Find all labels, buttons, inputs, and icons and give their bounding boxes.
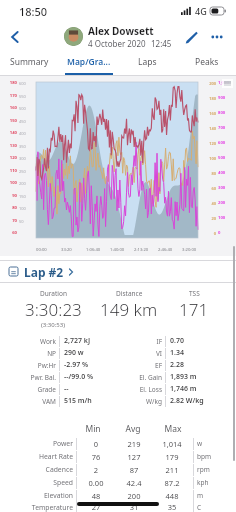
staticText: 1,746 m	[170, 384, 224, 394]
staticText: 150	[19, 194, 26, 199]
staticText: Speed	[16, 478, 73, 487]
staticText: El. Gain	[118, 373, 162, 382]
staticText: 400	[19, 131, 26, 136]
staticText: 0.00	[77, 478, 115, 488]
staticText: VAM	[12, 397, 56, 406]
staticText: 4G	[195, 5, 207, 17]
staticText: 180	[2, 80, 17, 86]
staticText: Cadence	[16, 465, 73, 474]
staticText: 170	[2, 93, 17, 99]
staticText: 1:06:40	[86, 247, 101, 253]
staticText: 1,000	[218, 80, 234, 86]
staticText: Duration	[40, 289, 67, 298]
button[interactable]: More options	[204, 24, 230, 50]
staticText: 50	[19, 219, 24, 224]
button[interactable]: Summary	[0, 51, 59, 73]
staticText: 3:30:23	[25, 298, 82, 321]
staticText: w	[197, 439, 222, 448]
staticText: 33:20	[61, 247, 72, 253]
staticText: m	[197, 491, 222, 500]
button[interactable]: Back	[0, 22, 30, 51]
staticText: 90	[2, 193, 17, 199]
button[interactable]: Chart legend	[222, 79, 233, 88]
staticText: 48	[77, 491, 115, 501]
staticText: Elevation	[16, 491, 73, 500]
staticText: Summary	[10, 56, 49, 68]
staticText: 2.28	[170, 360, 224, 370]
staticText: 800	[218, 110, 234, 116]
staticText: TSS	[189, 289, 200, 298]
staticText: 550	[19, 94, 26, 99]
staticText: Alex Dowsett	[88, 24, 154, 38]
staticText: 0	[77, 439, 115, 449]
staticText: 179	[153, 452, 191, 462]
staticText: Lap #2	[24, 264, 64, 280]
staticText: (3:30:53)	[41, 321, 65, 329]
staticText: 200	[19, 181, 26, 186]
staticText: 100	[205, 156, 216, 161]
staticText: 500	[218, 155, 234, 161]
staticText: 00:00	[36, 247, 47, 253]
staticText: C	[197, 503, 222, 512]
staticText: 1.34	[170, 348, 224, 358]
staticText: 171	[179, 298, 209, 321]
staticText: Pw:Hr	[12, 361, 56, 370]
staticText: 42.4	[115, 478, 153, 488]
staticText: --	[64, 384, 118, 394]
button[interactable]: Alex Dowsett	[64, 24, 172, 49]
staticText: NP	[12, 349, 56, 358]
staticText: 160	[2, 105, 17, 111]
staticText: 180	[205, 96, 216, 101]
staticText: 515 m/h	[64, 396, 118, 406]
staticText: 20	[205, 216, 216, 221]
staticText: 27	[77, 502, 115, 512]
staticText: -2.97 %	[64, 360, 118, 370]
staticText: 2:46:40	[158, 247, 173, 253]
staticText: Distance	[116, 289, 143, 298]
button[interactable]: Map/Gra...	[59, 51, 118, 73]
staticText: 300	[218, 185, 234, 191]
staticText: 1:40:00	[110, 247, 125, 253]
staticText: Temperature	[16, 503, 73, 512]
staticText: IF	[118, 337, 162, 346]
staticText: VI	[118, 349, 162, 358]
staticText: 448	[153, 491, 191, 501]
button[interactable]: Lap #2	[0, 261, 236, 282]
staticText: El. Loss	[118, 385, 162, 394]
staticText: 31	[115, 502, 153, 512]
staticText: 350	[19, 144, 26, 149]
staticText: Laps	[138, 56, 157, 68]
staticText: 100	[2, 180, 17, 186]
staticText: 40	[205, 201, 216, 206]
staticText: 290 w	[64, 348, 118, 358]
staticText: 0.70	[170, 336, 224, 346]
staticText: Heart Rate	[16, 452, 73, 461]
staticText: 3:20:00	[182, 247, 197, 253]
staticText: rpm	[197, 465, 222, 474]
staticText: 130	[2, 143, 17, 149]
staticText: Map/Gra...	[67, 56, 111, 68]
staticText: Work	[12, 337, 56, 346]
button[interactable]: Edit	[178, 24, 204, 50]
staticText: --/99.0 %	[64, 372, 118, 382]
staticText: 80	[205, 171, 216, 176]
staticText: EF	[118, 361, 162, 370]
staticText: Power	[16, 439, 73, 448]
staticText: Avg	[113, 423, 153, 435]
staticText: 200	[218, 200, 234, 206]
staticText: 140	[2, 130, 17, 136]
staticText: 127	[115, 452, 153, 462]
staticText: 600	[218, 140, 234, 146]
staticText: 160	[205, 111, 216, 116]
button[interactable]: Laps	[118, 51, 177, 73]
staticText: Peaks	[195, 56, 219, 68]
staticText: Pwr. Bal.	[12, 373, 56, 382]
staticText: W/kg	[118, 397, 162, 406]
staticText: 80	[2, 205, 17, 211]
staticText: 450	[19, 119, 26, 124]
staticText: 2	[77, 465, 115, 475]
staticText: 35	[153, 502, 191, 512]
staticText: 120	[2, 155, 17, 161]
staticText: 149 km	[100, 298, 158, 321]
button[interactable]: Peaks	[177, 51, 236, 73]
